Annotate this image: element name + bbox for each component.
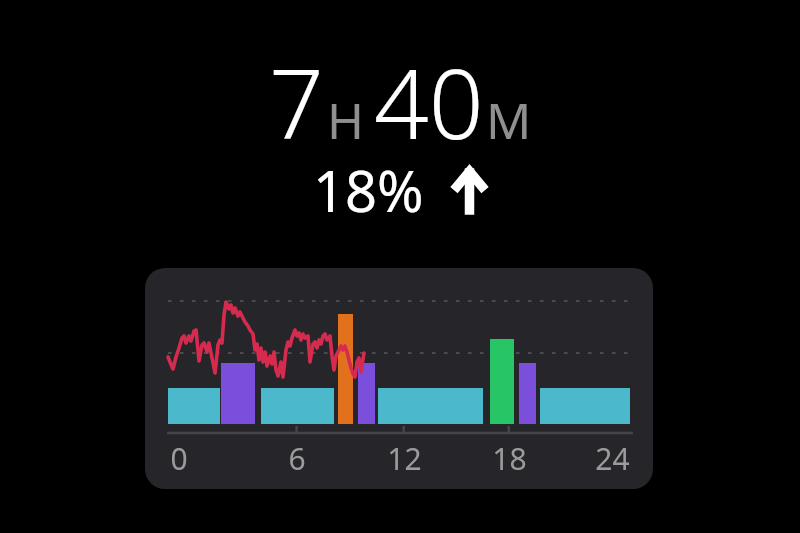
- staticText: H: [327, 86, 365, 154]
- staticText: 18: [492, 438, 527, 479]
- staticText: 12: [387, 438, 422, 479]
- staticText: 6: [288, 438, 306, 479]
- staticText: 40: [374, 36, 484, 167]
- staticText: 18%: [313, 152, 424, 228]
- button[interactable]: 0: [145, 268, 653, 489]
- staticText: 0: [170, 438, 188, 479]
- staticText: M: [486, 86, 532, 154]
- staticText: 24: [595, 438, 630, 479]
- staticText: 7: [269, 36, 324, 167]
